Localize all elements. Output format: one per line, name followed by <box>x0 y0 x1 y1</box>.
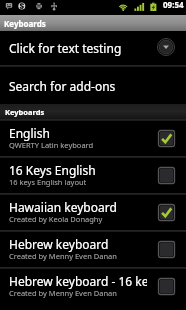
button[interactable]: 16 Keys English <box>0 158 186 193</box>
staticText: 09:54 <box>163 0 184 10</box>
staticText: 16 Keys English <box>9 163 147 178</box>
button[interactable]: Hebrew keyboard - 16 keys <box>0 269 186 304</box>
button[interactable]: Hawaiian keyboard <box>0 195 186 230</box>
staticText: Hebrew keyboard <box>9 237 147 252</box>
button[interactable]: Click for text testing <box>0 31 186 65</box>
staticText: Search for add-ons <box>9 78 116 94</box>
button[interactable]: Hebrew keyboard <box>0 232 186 267</box>
staticText: Keyboards <box>5 107 45 117</box>
button[interactable]: English <box>0 121 186 156</box>
staticText: English <box>9 126 147 141</box>
staticText: Created by Menny Even Danan <box>9 288 147 298</box>
staticText: Created by Keola Donaghy <box>9 214 147 224</box>
staticText: Hawaiian keyboard <box>9 200 147 215</box>
staticText: Keyboards <box>4 18 46 29</box>
staticText: Hebrew keyboard - 16 keys <box>9 274 147 289</box>
staticText: QWERTY Latin keyboard <box>9 140 147 150</box>
staticText: 16 keys English layout <box>9 177 147 187</box>
staticText: Click for text testing <box>9 40 122 56</box>
button[interactable]: Search for add-ons <box>0 67 186 104</box>
button[interactable]: Expand <box>157 38 175 56</box>
staticText: Created by Menny Even Danan <box>9 251 147 261</box>
